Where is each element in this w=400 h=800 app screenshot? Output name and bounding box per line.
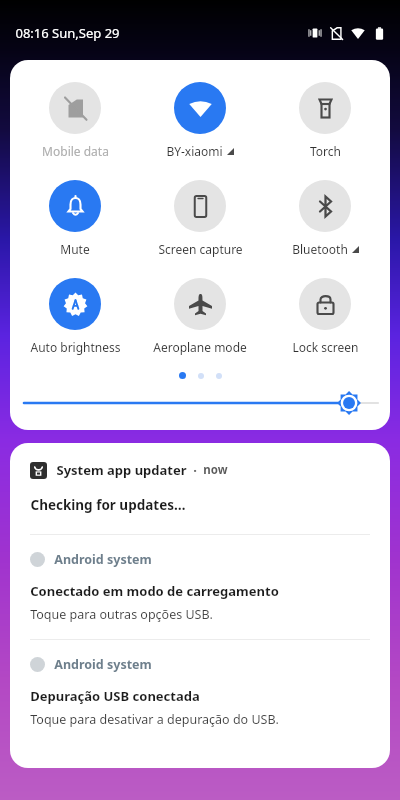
button[interactable]: Android system bbox=[10, 535, 390, 639]
staticText: Checking for updates… bbox=[30, 496, 186, 514]
staticText: BY-xiaomi bbox=[166, 143, 223, 159]
staticText: Aeroplane mode bbox=[153, 339, 247, 355]
button[interactable]: Aeroplane mode bbox=[140, 278, 260, 355]
staticText: Toque para outras opções USB. bbox=[30, 606, 213, 623]
staticText: 08:16 Sun,Sep 29 bbox=[15, 24, 120, 42]
staticText: Lock screen bbox=[292, 339, 359, 355]
staticText: Android system bbox=[54, 656, 152, 673]
button[interactable]: Mute bbox=[15, 180, 135, 257]
staticText: Mobile data bbox=[42, 143, 109, 159]
staticText: Android system bbox=[54, 551, 152, 568]
staticText: Torch bbox=[310, 143, 341, 159]
button[interactable]: Lock screen bbox=[265, 278, 385, 355]
button[interactable]: Torch bbox=[265, 82, 385, 159]
staticText: Auto brightness bbox=[30, 339, 121, 355]
button[interactable]: System app updater bbox=[10, 443, 390, 534]
staticText: Screen capture bbox=[158, 241, 243, 257]
staticText: System app updater bbox=[56, 461, 187, 479]
button[interactable]: Android system bbox=[10, 640, 390, 744]
button[interactable]: Brightness bbox=[16, 390, 384, 416]
staticText: Toque para desativar a depuração do USB. bbox=[30, 711, 279, 728]
button[interactable]: Bluetooth bbox=[265, 180, 385, 257]
staticText: Mute bbox=[60, 241, 90, 257]
staticText: now bbox=[203, 462, 228, 478]
staticText: Conectado em modo de carregamento bbox=[30, 582, 279, 600]
button[interactable]: Mobile data bbox=[15, 82, 135, 159]
button[interactable]: BY-xiaomi bbox=[140, 82, 260, 159]
staticText: Bluetooth bbox=[292, 241, 348, 257]
button[interactable]: Screen capture bbox=[140, 180, 260, 257]
staticText: · bbox=[193, 461, 197, 479]
staticText: Depuração USB conectada bbox=[30, 687, 200, 705]
button[interactable]: Auto brightness bbox=[15, 278, 135, 355]
